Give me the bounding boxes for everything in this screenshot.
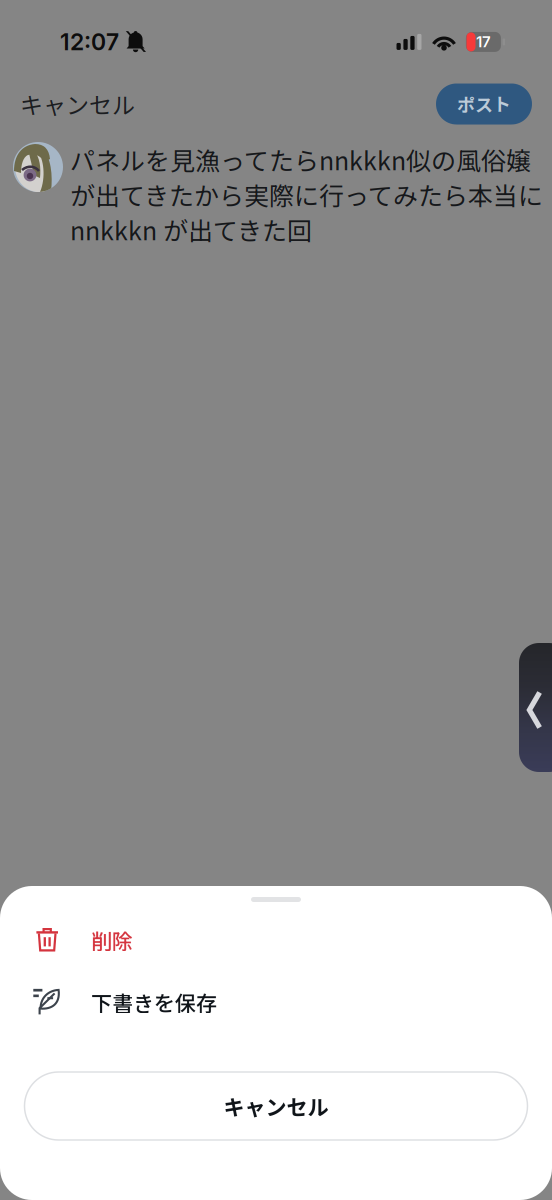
staticText: 12:07 [60, 28, 119, 56]
staticText: nnkkkn が出てきた回 [70, 211, 312, 248]
staticText: 削除 [91, 925, 133, 955]
button[interactable]: 下書きを保存 [0, 971, 552, 1033]
button[interactable]: キャンセル [0, 75, 151, 133]
staticText: 下書きを保存 [91, 987, 217, 1017]
button[interactable]: Back [519, 643, 552, 772]
staticText: ポスト [457, 91, 511, 117]
button[interactable]: 削除 [0, 909, 552, 971]
staticText: 17 [476, 33, 491, 51]
button[interactable]: キャンセル [24, 1072, 527, 1140]
button[interactable]: ポスト [436, 83, 552, 124]
staticText: が出てきたから実際に行ってみたら本当に [70, 176, 543, 213]
staticText: キャンセル [223, 1091, 328, 1121]
staticText: キャンセル [20, 87, 135, 121]
staticText: パネルを見漁ってたらnnkkkn似の風俗嬢 [70, 141, 531, 178]
